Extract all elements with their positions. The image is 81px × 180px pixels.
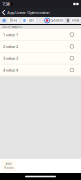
button[interactable]: 4 value 4 (0, 64, 81, 76)
staticText: List of samples (2, 25, 21, 29)
staticText: Done (10, 19, 18, 22)
button[interactable]: Done (8, 18, 19, 23)
staticText: 3 value 3 (3, 55, 18, 61)
button[interactable]: 1 value 1 (0, 29, 81, 41)
staticText: 1 value 1 (3, 32, 18, 37)
staticText: Index (72, 19, 79, 22)
staticText: Points (4, 166, 13, 170)
staticText: Subscribe (51, 19, 64, 22)
staticText: Add (6, 162, 12, 166)
button[interactable]: Record (44, 18, 50, 23)
staticText: 4 value 4 (3, 67, 18, 73)
button[interactable]: Tools (22, 18, 27, 23)
button[interactable]: Subscribe (51, 18, 64, 23)
button[interactable]: 3 value 3 (0, 53, 81, 64)
button[interactable]: Back (0, 8, 7, 17)
button[interactable]: 2 value 2 (0, 41, 81, 53)
button[interactable]: Index (71, 18, 80, 23)
staticText: 7:38 (2, 1, 9, 7)
button[interactable]: Menu (2, 17, 7, 24)
button[interactable]: Edit (28, 18, 36, 23)
staticText: App Linear Optimization (7, 10, 49, 15)
staticText: 2 value 2 (3, 44, 18, 49)
button[interactable]: Share (66, 18, 70, 23)
button[interactable]: Add (1, 160, 16, 171)
staticText: Edit (29, 19, 34, 22)
